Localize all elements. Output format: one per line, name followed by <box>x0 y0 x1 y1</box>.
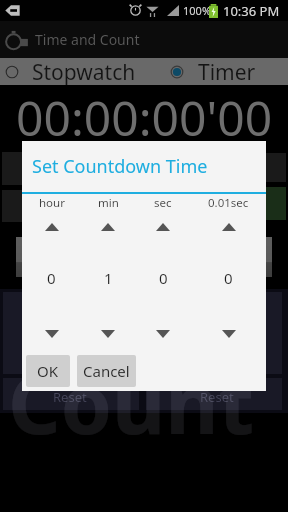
staticText: sec <box>154 195 172 207</box>
staticText: 100% <box>183 3 212 18</box>
button[interactable]: Timer <box>144 58 288 85</box>
button[interactable]: Decrease <box>22 329 81 339</box>
staticText: Cancel <box>83 361 130 381</box>
other: Back <box>5 4 20 17</box>
staticText: Reset <box>53 388 87 406</box>
staticText: hour <box>39 195 65 207</box>
staticText: 10:36 PM <box>223 2 280 20</box>
staticText: Set Countdown Time <box>32 154 208 179</box>
button[interactable]: Increase <box>191 222 266 232</box>
button[interactable]: OK <box>26 355 70 387</box>
staticText: 0 <box>159 268 168 284</box>
staticText: 0 <box>224 268 233 284</box>
staticText: Stopwatch <box>32 58 136 85</box>
staticText: Time and Count <box>35 30 140 49</box>
button[interactable]: Cancel <box>77 355 136 387</box>
staticText: min <box>98 195 119 207</box>
staticText: Timer <box>198 58 256 85</box>
staticText: OK <box>37 361 59 381</box>
staticText: 00:00:00'00 <box>16 85 273 141</box>
button[interactable]: Decrease <box>135 329 191 339</box>
staticText: 1 <box>104 268 113 284</box>
button[interactable]: Stopwatch <box>0 58 144 85</box>
button[interactable]: Decrease <box>81 329 135 339</box>
button[interactable]: Increase <box>22 222 81 232</box>
staticText: 0 <box>47 268 56 284</box>
staticText: Count <box>8 346 255 458</box>
staticText: 0.01sec <box>208 195 249 207</box>
button[interactable]: Decrease <box>191 329 266 339</box>
button[interactable]: Increase <box>135 222 191 232</box>
staticText: Reset <box>200 388 234 406</box>
button[interactable]: Increase <box>81 222 135 232</box>
